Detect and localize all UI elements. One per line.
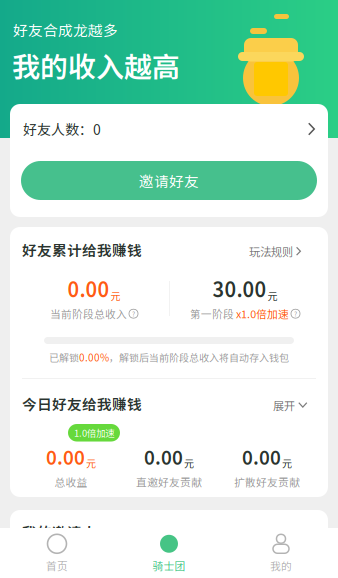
staticText: 30.00 bbox=[212, 274, 266, 303]
staticText: x1.0倍加速 bbox=[236, 306, 289, 321]
button[interactable]: 展开 bbox=[273, 397, 308, 413]
button[interactable]: 邀请好友 bbox=[21, 161, 317, 200]
staticText: 邀请好友 bbox=[139, 170, 199, 191]
staticText: 好友合成龙越多 bbox=[13, 19, 118, 40]
staticText: 今日好友给我赚钱 bbox=[22, 393, 142, 414]
staticText: 首页 bbox=[46, 558, 68, 573]
staticText: 1.0倍加速 bbox=[74, 426, 114, 439]
staticText: ，解锁后当前阶段总收入将自动存入钱包 bbox=[109, 350, 289, 364]
staticText: 元 bbox=[110, 288, 120, 303]
staticText: 0.00 bbox=[46, 443, 85, 470]
staticText: 元 bbox=[184, 455, 194, 470]
staticText: 我的 bbox=[270, 558, 292, 573]
staticText: 0.00 bbox=[67, 274, 109, 303]
button[interactable]: 我的 bbox=[225, 528, 337, 578]
staticText: 好友人数：0 bbox=[23, 119, 101, 139]
staticText: 我的邀请人 bbox=[22, 521, 97, 542]
staticText: 我的收入越高 bbox=[12, 45, 180, 85]
staticText: 元 bbox=[282, 455, 292, 470]
staticText: 骑士团 bbox=[152, 558, 185, 573]
staticText: 元 bbox=[267, 288, 277, 303]
staticText: 已解锁 bbox=[49, 350, 79, 364]
staticText: 扩散好友贡献 bbox=[234, 474, 300, 489]
staticText: 好友累计给我赚钱 bbox=[22, 239, 142, 260]
staticText: 玩法规则 bbox=[249, 243, 293, 259]
staticText: 直邀好友贡献 bbox=[136, 474, 202, 489]
button[interactable]: 玩法规则 bbox=[249, 243, 301, 259]
staticText: 0.00% bbox=[79, 350, 109, 364]
button[interactable]: 骑士团 bbox=[113, 528, 225, 578]
staticText: 元 bbox=[86, 455, 96, 470]
staticText: 展开 bbox=[273, 397, 295, 413]
staticText: 总收益 bbox=[54, 474, 87, 489]
staticText: 0.00 bbox=[242, 443, 281, 470]
staticText: 第一阶段 bbox=[190, 306, 234, 321]
button[interactable]: 好友人数：0 bbox=[10, 104, 328, 154]
staticText: 0.00 bbox=[144, 443, 183, 470]
staticText: ? bbox=[132, 309, 135, 319]
staticText: 当前阶段总收入 bbox=[50, 306, 127, 321]
staticText: ? bbox=[294, 309, 297, 319]
button[interactable]: 首页 bbox=[1, 528, 113, 578]
